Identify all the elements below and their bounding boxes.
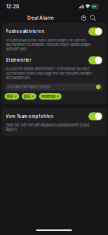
staticText: ✕ [31, 94, 34, 98]
staticText: 12:28 [6, 4, 19, 9]
button[interactable]: ps5 [22, 93, 36, 100]
staticText: ✕ [14, 94, 17, 98]
staticText: nintendo [41, 94, 55, 99]
staticText: Vom Team empfohlen [6, 114, 54, 119]
staticText: Deal Alarm [27, 15, 53, 21]
button[interactable]: Profil [81, 15, 87, 21]
staticText: Zwei bis vier von der Redaktion ausgewäh… [6, 123, 90, 132]
staticText: Um personalisierte Push-Mitteilungen mit… [6, 38, 91, 51]
staticText: ✕ [56, 94, 59, 98]
staticText: Pushes aktivieren [6, 29, 45, 34]
staticText: Du suchst etwas bestimmtes? Hier kannst … [6, 67, 92, 80]
staticText: ps5 [7, 94, 13, 99]
button[interactable]: Suchen [90, 15, 96, 21]
button[interactable]: Einschalten [88, 112, 102, 120]
staticText: Stichwörter [6, 58, 32, 63]
button[interactable]: Einschalten [88, 56, 102, 64]
staticText: Gib dein Stichwort hier ein [7, 85, 51, 89]
button[interactable]: ps5 [5, 93, 19, 100]
staticText: ps5 [24, 94, 30, 99]
button[interactable]: nintendo [39, 93, 62, 100]
button[interactable]: Einschalten [88, 27, 102, 35]
button[interactable]: Gib dein Stichwort hier ein [5, 83, 103, 90]
